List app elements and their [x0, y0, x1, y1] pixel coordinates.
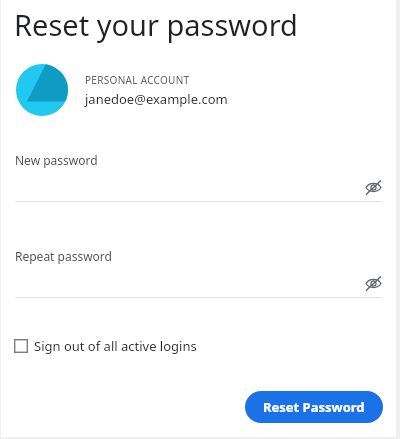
button[interactable]: Show password [363, 273, 383, 293]
button[interactable]: Reset Password [245, 391, 383, 423]
button[interactable]: PERSONAL ACCOUNT [16, 64, 396, 116]
button[interactable]: Show password [363, 177, 383, 197]
staticText: janedoe@example.com [85, 90, 228, 108]
staticText: Reset Password [263, 398, 365, 416]
staticText: Repeat password [15, 248, 112, 264]
staticText: PERSONAL ACCOUNT [85, 73, 190, 87]
staticText: Reset your password [14, 5, 298, 44]
staticText: Sign out of all active logins [34, 337, 197, 355]
staticText: New password [15, 152, 98, 168]
button[interactable]: Sign out of all active logins [14, 337, 197, 355]
